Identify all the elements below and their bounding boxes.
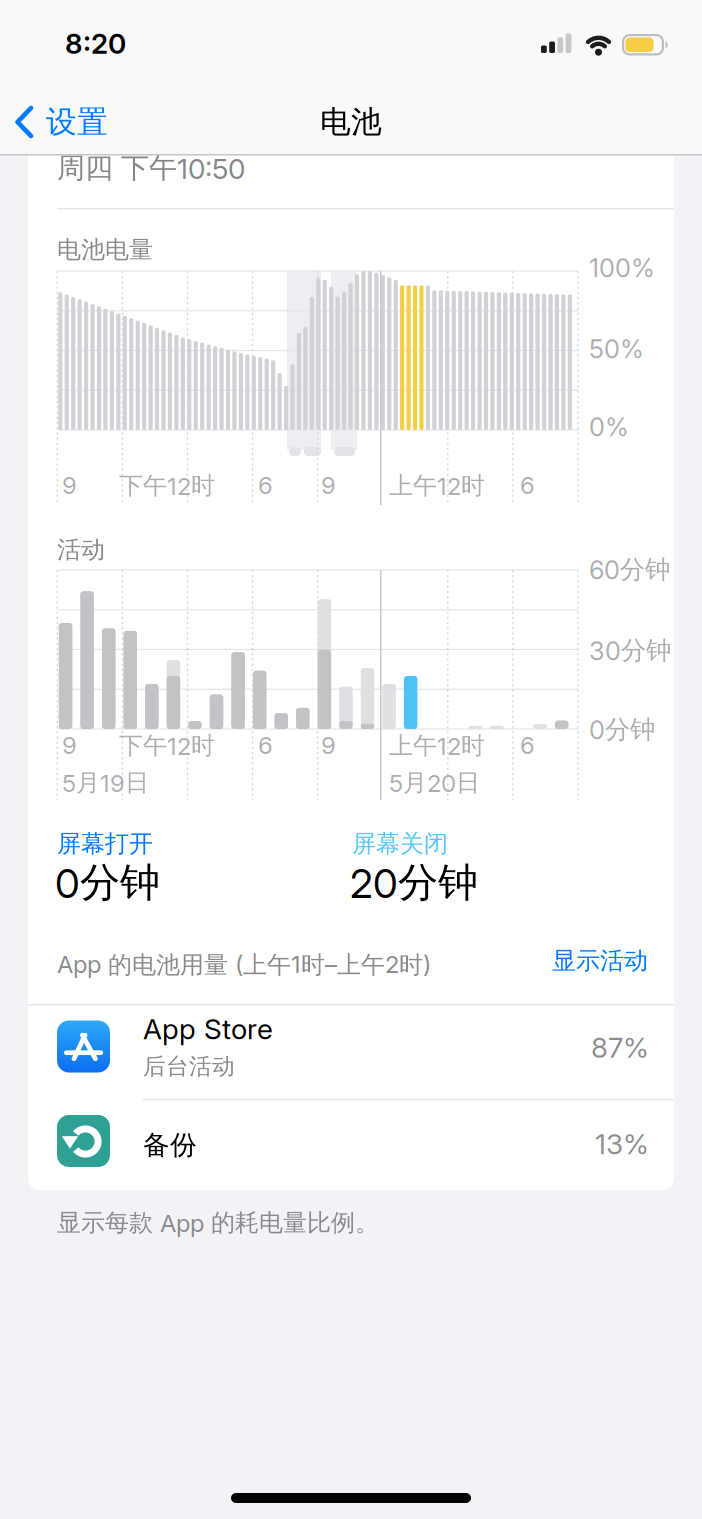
staticText: 电池电量 <box>57 235 153 264</box>
staticText: 显示活动 <box>552 946 648 975</box>
button[interactable]: 显示活动 <box>552 946 648 975</box>
staticText: 上午12时 <box>389 731 485 760</box>
staticText: 0% <box>589 412 629 442</box>
staticText: 9 <box>321 471 336 499</box>
staticText: 20分钟 <box>350 858 478 907</box>
staticText: 屏幕关闭 <box>352 829 448 858</box>
button[interactable]: 备份 <box>28 1100 674 1190</box>
staticText: 9 <box>321 731 336 759</box>
staticText: 30分钟 <box>589 635 671 666</box>
staticText: 下午12时 <box>119 731 215 760</box>
staticText: 5月19日 <box>62 768 149 797</box>
staticText: 6 <box>258 471 273 499</box>
staticText: 6 <box>520 731 535 759</box>
staticText: App Store <box>143 1013 273 1046</box>
staticText: 60分钟 <box>589 554 670 585</box>
staticText: App 的电池用量 (上午1时–上午2时) <box>57 950 431 980</box>
staticText: 屏幕打开 <box>57 829 153 858</box>
staticText: 活动 <box>57 535 105 564</box>
staticText: 87% <box>591 1031 649 1064</box>
staticText: 0分钟 <box>589 714 655 745</box>
staticText: 8:20 <box>65 27 126 60</box>
staticText: 备份 <box>143 1129 197 1161</box>
staticText: 上午12时 <box>389 471 485 500</box>
staticText: 100% <box>589 253 655 283</box>
button[interactable]: App Store <box>28 1005 674 1100</box>
staticText: 后台活动 <box>143 1053 235 1080</box>
staticText: 5月20日 <box>389 768 480 797</box>
staticText: 6 <box>520 471 535 499</box>
staticText: 设置 <box>46 103 108 141</box>
button[interactable]: 设置 <box>14 90 108 154</box>
staticText: 9 <box>62 731 77 759</box>
staticText: 50% <box>589 334 644 364</box>
staticText: 显示每款 App 的耗电量比例。 <box>57 1208 379 1237</box>
staticText: 电池 <box>320 103 382 141</box>
staticText: 周四 下午10:50 <box>57 151 245 185</box>
staticText: 0分钟 <box>55 858 160 907</box>
staticText: 9 <box>62 471 77 499</box>
staticText: 下午12时 <box>119 471 215 500</box>
staticText: 6 <box>258 731 273 759</box>
staticText: 13% <box>595 1127 649 1160</box>
